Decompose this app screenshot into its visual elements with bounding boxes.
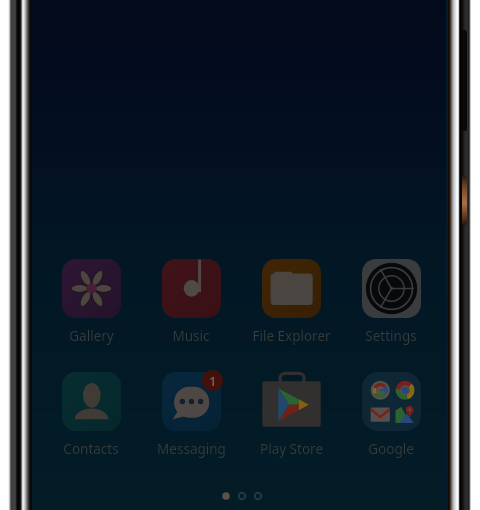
staticText: Play Store: [260, 440, 323, 458]
button[interactable]: Settings: [343, 251, 439, 345]
button[interactable]: File Explorer: [243, 251, 339, 345]
staticText: Google: [368, 440, 414, 458]
button[interactable]: Gallery: [43, 251, 139, 345]
staticText: Gallery: [69, 327, 114, 345]
staticText: Contacts: [63, 440, 119, 458]
button[interactable]: Music: [143, 251, 239, 345]
button[interactable]: Power: [462, 176, 467, 225]
staticText: 1: [209, 372, 217, 390]
staticText: File Explorer: [252, 327, 331, 345]
staticText: Settings: [365, 327, 417, 345]
button[interactable]: 1: [143, 364, 239, 458]
staticText: Music: [172, 327, 210, 345]
staticText: Messaging: [157, 440, 226, 458]
button[interactable]: Contacts: [43, 364, 139, 458]
button[interactable]: Google: [343, 364, 439, 458]
button[interactable]: Play Store: [243, 364, 339, 458]
